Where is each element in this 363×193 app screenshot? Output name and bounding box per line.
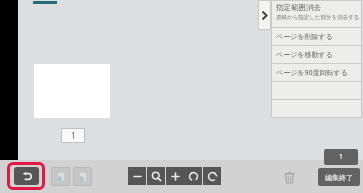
button[interactable]: 編集終了 bbox=[318, 168, 360, 186]
button[interactable]: Previous page bbox=[51, 167, 70, 186]
button[interactable]: 指定範囲消去 bbox=[271, 0, 362, 27]
button[interactable]: ページを移動する bbox=[271, 46, 362, 63]
staticText: 1 bbox=[339, 152, 344, 162]
button[interactable] bbox=[271, 100, 362, 117]
button[interactable]: Delete bbox=[281, 168, 297, 186]
button[interactable]: 1 bbox=[61, 128, 85, 143]
button[interactable]: ページを90度回転する bbox=[271, 64, 362, 81]
button[interactable]: Zoom bbox=[147, 167, 165, 185]
button[interactable]: Undo bbox=[7, 162, 45, 190]
staticText: ページを移動する bbox=[276, 50, 333, 59]
button[interactable]: Zoom out bbox=[128, 167, 146, 185]
staticText: 原稿から指定した部分を消去する bbox=[276, 14, 360, 21]
staticText: 指定範囲消去 bbox=[276, 3, 321, 12]
staticText: 編集終了 bbox=[325, 173, 353, 182]
button[interactable]: Rotate left bbox=[184, 167, 202, 185]
button[interactable]: 1 bbox=[324, 149, 358, 165]
staticText: ページを削除する bbox=[276, 32, 333, 41]
button[interactable] bbox=[271, 82, 362, 99]
staticText: 1 bbox=[71, 130, 76, 141]
staticText: ページを90度回転する bbox=[276, 68, 348, 78]
button[interactable]: Collapse panel bbox=[258, 0, 271, 30]
button[interactable]: Rotate right bbox=[203, 167, 221, 185]
button[interactable]: Next page bbox=[73, 167, 92, 186]
button[interactable]: ページを削除する bbox=[271, 28, 362, 45]
button[interactable]: Zoom in bbox=[166, 167, 184, 185]
